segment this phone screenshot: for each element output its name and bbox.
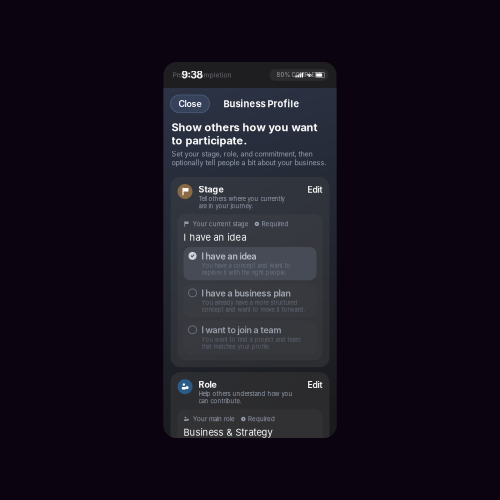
staticText: 80% COMPLETE xyxy=(276,72,321,78)
staticText: Show others how you want to participate. xyxy=(171,121,317,147)
staticText: I want to join a team xyxy=(201,325,281,335)
staticText: Close xyxy=(178,98,201,109)
staticText: I have an idea xyxy=(201,251,256,261)
staticText: Edit xyxy=(307,184,322,195)
staticText: You want to find a project and team that… xyxy=(201,336,300,350)
staticText: You already have a more structured conce… xyxy=(201,299,305,313)
staticText: Help others understand how you can contr… xyxy=(198,390,292,405)
button[interactable]: Edit xyxy=(307,184,322,195)
button[interactable]: I have an idea xyxy=(183,247,316,280)
staticText: You have a concept and want to explore i… xyxy=(201,262,290,276)
button[interactable]: Edit xyxy=(307,379,322,390)
staticText: Profile Completion xyxy=(172,71,231,79)
staticText: Role xyxy=(198,379,216,390)
button[interactable]: I want to join a team xyxy=(183,321,316,354)
staticText: Set your stage, role, and commitment, th… xyxy=(171,150,326,167)
staticText: Business Profile xyxy=(223,98,299,109)
staticText: I have a business plan xyxy=(201,288,290,298)
staticText: 9:38 xyxy=(181,69,202,81)
staticText: Your current stage xyxy=(193,220,249,228)
staticText: Stage xyxy=(198,184,223,195)
staticText: Your main role xyxy=(193,415,235,423)
button[interactable]: Close xyxy=(170,95,209,113)
button[interactable]: I have a business plan xyxy=(183,284,316,317)
staticText: Required xyxy=(262,220,289,228)
staticText: Business & Strategy xyxy=(183,427,272,438)
staticText: Edit xyxy=(307,380,322,390)
staticText: Required xyxy=(248,415,275,423)
staticText: Tell others where you currently are in y… xyxy=(198,195,284,210)
staticText: I have an idea xyxy=(183,232,246,243)
